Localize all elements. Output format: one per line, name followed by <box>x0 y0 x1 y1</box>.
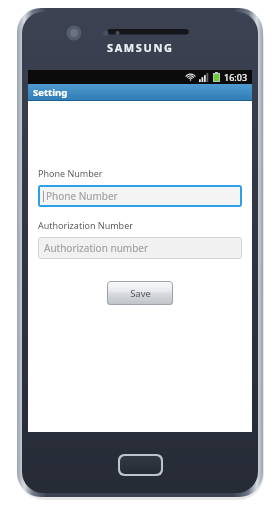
button[interactable]: Phone Number <box>38 185 242 207</box>
staticText: SAMSUNG <box>107 40 174 55</box>
staticText: 16:03 <box>224 71 248 83</box>
staticText: Setting <box>33 86 68 99</box>
staticText: Authorization number <box>44 241 149 255</box>
button[interactable]: Save <box>107 281 173 305</box>
staticText: Phone Number <box>38 167 103 179</box>
staticText: Save <box>130 287 151 300</box>
button[interactable]: Authorization number <box>38 237 242 259</box>
staticText: Phone Number <box>46 189 118 203</box>
button[interactable]: Home <box>120 456 161 474</box>
staticText: Authorization Number <box>38 219 133 231</box>
